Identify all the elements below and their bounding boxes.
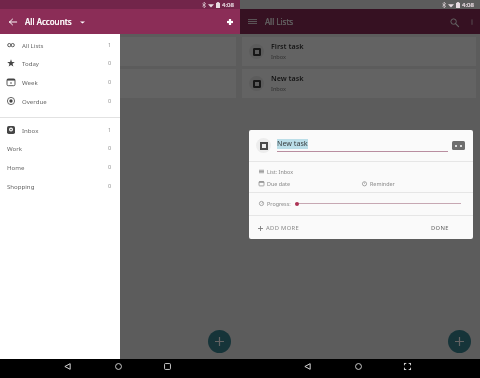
button[interactable]: Add task bbox=[208, 330, 231, 353]
button[interactable]: More options bbox=[464, 14, 480, 30]
staticText: Reminder bbox=[370, 180, 395, 187]
button[interactable]: Back bbox=[0, 9, 25, 34]
staticText: New task bbox=[277, 139, 308, 149]
button[interactable]: Recent apps bbox=[400, 359, 415, 374]
button[interactable]: ADD MORE bbox=[258, 224, 300, 232]
button[interactable]: Due date bbox=[259, 180, 362, 187]
button[interactable]: First task bbox=[242, 37, 476, 66]
staticText: 4:08 bbox=[222, 1, 234, 9]
staticText: Progress: bbox=[267, 200, 291, 207]
staticText: New task bbox=[31, 74, 64, 84]
button[interactable]: Add task bbox=[448, 330, 471, 353]
button[interactable]: Home bbox=[351, 359, 366, 374]
button[interactable]: Search bbox=[444, 12, 464, 32]
staticText: 1 bbox=[108, 41, 112, 49]
staticText: Inbox bbox=[22, 126, 39, 134]
staticText: Home bbox=[7, 163, 25, 171]
staticText: ADD MORE bbox=[266, 224, 300, 232]
button[interactable]: List: Inbox bbox=[259, 168, 473, 175]
staticText: 0 bbox=[108, 97, 112, 105]
staticText: First task bbox=[271, 42, 304, 52]
button[interactable]: Inbox bbox=[0, 120, 120, 139]
button[interactable]: Back bbox=[300, 359, 315, 374]
staticText: List: Inbox bbox=[267, 168, 294, 175]
button[interactable]: Home bbox=[111, 359, 126, 374]
button[interactable]: DONE bbox=[431, 224, 449, 232]
staticText: Week bbox=[22, 78, 38, 86]
staticText: All Lists bbox=[265, 16, 294, 27]
staticText: All Accounts bbox=[25, 16, 72, 27]
button[interactable]: Mark complete bbox=[256, 138, 271, 153]
staticText: 0 bbox=[108, 163, 112, 171]
button[interactable]: Open navigation drawer bbox=[240, 9, 265, 34]
button[interactable]: Reminder bbox=[362, 180, 465, 187]
button[interactable]: Add account bbox=[220, 9, 240, 34]
button[interactable]: Choose account bbox=[76, 16, 88, 28]
staticText: 1 bbox=[108, 126, 112, 134]
staticText: New task bbox=[271, 74, 304, 84]
staticText: Inbox bbox=[271, 53, 287, 61]
button[interactable]: Shopping bbox=[0, 176, 120, 195]
button[interactable]: All Lists bbox=[0, 35, 120, 54]
staticText: 0 bbox=[108, 59, 112, 67]
staticText: Work bbox=[7, 144, 23, 152]
staticText: 0 bbox=[108, 78, 112, 86]
button[interactable]: Hide keyboard bbox=[452, 141, 465, 150]
staticText: DONE bbox=[431, 224, 449, 232]
button[interactable]: Today bbox=[0, 53, 120, 72]
staticText: 0 bbox=[108, 144, 112, 152]
staticText: Due date bbox=[267, 180, 291, 187]
staticText: Shopping bbox=[7, 182, 35, 190]
staticText: First task bbox=[31, 42, 64, 52]
staticText: 4:08 bbox=[462, 1, 474, 9]
button[interactable]: Recent apps bbox=[160, 359, 175, 374]
button[interactable]: First task bbox=[2, 37, 236, 66]
button[interactable]: Week bbox=[0, 72, 120, 91]
staticText: Overdue bbox=[22, 97, 47, 105]
staticText: 0 bbox=[108, 182, 112, 190]
staticText: All Lists bbox=[22, 41, 44, 49]
staticText: Today bbox=[22, 59, 39, 67]
button[interactable]: New task bbox=[242, 69, 476, 98]
button[interactable]: Overdue bbox=[0, 91, 120, 110]
button[interactable]: New task bbox=[2, 69, 236, 98]
button[interactable]: Home bbox=[0, 157, 120, 176]
button[interactable]: Back bbox=[60, 359, 75, 374]
button[interactable]: Work bbox=[0, 138, 120, 157]
staticText: Inbox bbox=[271, 85, 287, 93]
